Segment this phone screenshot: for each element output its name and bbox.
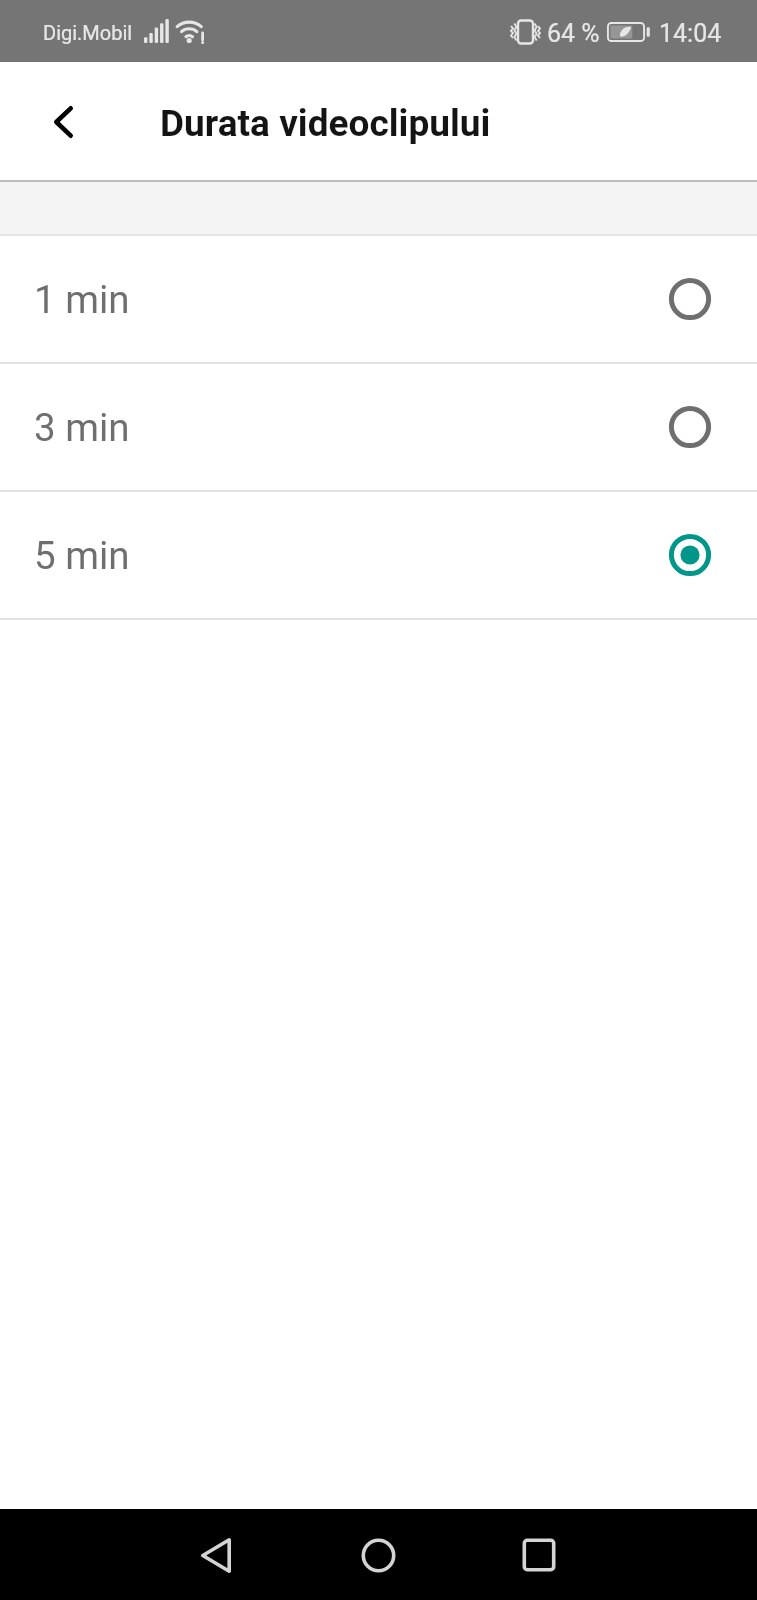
button[interactable]: 3 min: [0, 364, 757, 490]
staticText: 14:04: [659, 19, 722, 48]
staticText: Digi.Mobil: [43, 21, 133, 44]
button[interactable]: 5 min: [0, 492, 757, 618]
staticText: 64 %: [547, 19, 600, 48]
button[interactable]: Home: [333, 1510, 423, 1600]
button[interactable]: Recent apps: [494, 1510, 584, 1600]
button[interactable]: 1 min: [0, 236, 757, 362]
staticText: 5 min: [34, 533, 130, 578]
staticText: 3 min: [34, 405, 130, 450]
staticText: 1 min: [34, 277, 130, 322]
staticText: Durata videoclipului: [160, 102, 491, 145]
button[interactable]: Back: [171, 1510, 261, 1600]
button[interactable]: Back: [29, 88, 97, 156]
